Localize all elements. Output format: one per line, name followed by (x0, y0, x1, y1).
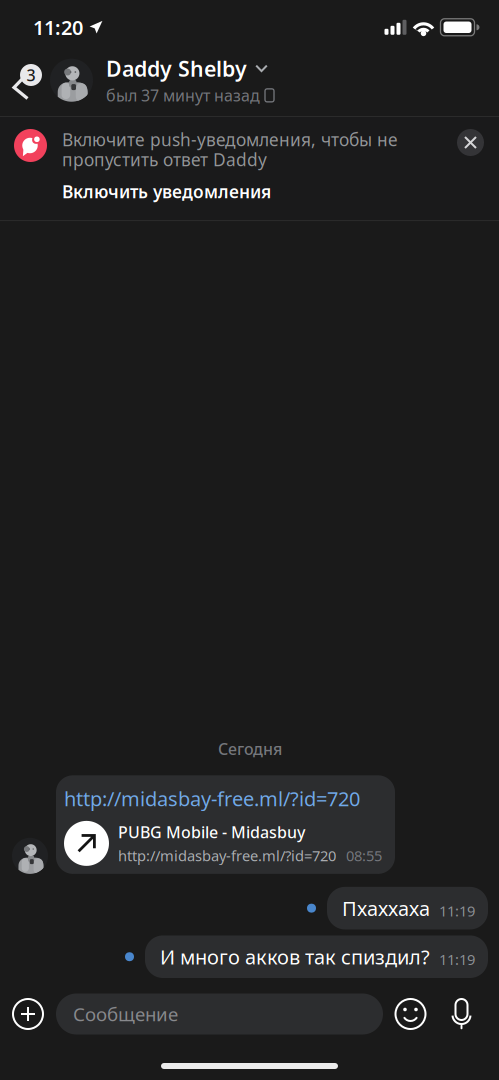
staticText: PUBG Mobile - Midasbuy (118, 821, 305, 843)
staticText: И много акков так спиздил? (160, 943, 430, 970)
staticText: Включите push-уведомления, чтобы не (62, 128, 398, 151)
button[interactable]: Close (457, 128, 484, 156)
button[interactable]: Attach (0, 989, 56, 1039)
button[interactable]: Emoji (383, 989, 438, 1039)
staticText: Сегодня (218, 738, 282, 759)
staticText: Сообщение (73, 1002, 178, 1026)
staticText: был 37 минут назад (106, 85, 260, 106)
staticText: 08:55 (346, 846, 382, 865)
button[interactable]: Сообщение (56, 993, 383, 1034)
staticText: Daddy Shelby (106, 54, 247, 83)
button[interactable]: Daddy Shelby (50, 58, 274, 116)
staticText: 11:19 (439, 949, 475, 969)
staticText: http://midasbay-free.ml/?id=720 (64, 785, 360, 812)
button[interactable]: Back (0, 58, 50, 116)
staticText: 11:19 (439, 901, 475, 920)
button[interactable]: Voice message (438, 989, 485, 1039)
button[interactable]: Включить уведомления (14, 171, 279, 203)
staticText: 11:20 (33, 14, 83, 41)
staticText: 3 (26, 64, 35, 86)
staticText: http://midasbay-free.ml/?id=720 (118, 846, 336, 865)
staticText: Пхаххаха (342, 895, 430, 921)
staticText: пропустить ответ Daddy (62, 148, 267, 171)
staticText: Включить уведомления (62, 180, 271, 203)
